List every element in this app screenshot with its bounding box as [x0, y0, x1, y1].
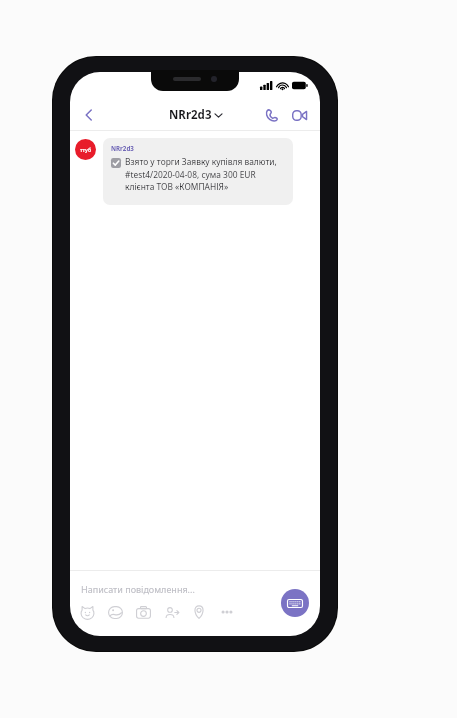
button[interactable]: Keyboard [281, 589, 309, 617]
staticText: ттуб [80, 146, 92, 153]
button[interactable]: Send location [190, 603, 208, 621]
button[interactable]: Video call [286, 102, 312, 128]
button[interactable]: ттуб [75, 138, 293, 205]
button[interactable]: More [218, 603, 236, 621]
staticText: Написати повідомлення... [81, 583, 195, 595]
button[interactable]: Send contact [162, 603, 180, 621]
staticText: NRr2d3 [169, 107, 212, 123]
button[interactable]: Gallery [106, 603, 124, 621]
button[interactable]: Camera [134, 603, 152, 621]
button[interactable]: NRr2d3 [169, 107, 222, 123]
staticText: NRr2d3 [111, 144, 134, 152]
button[interactable]: Voice call [258, 102, 284, 128]
button[interactable]: Stickers [78, 603, 96, 621]
button[interactable]: Back [74, 100, 104, 130]
staticText: Взято у торги Заявку купівля валюти, #te… [125, 156, 285, 192]
